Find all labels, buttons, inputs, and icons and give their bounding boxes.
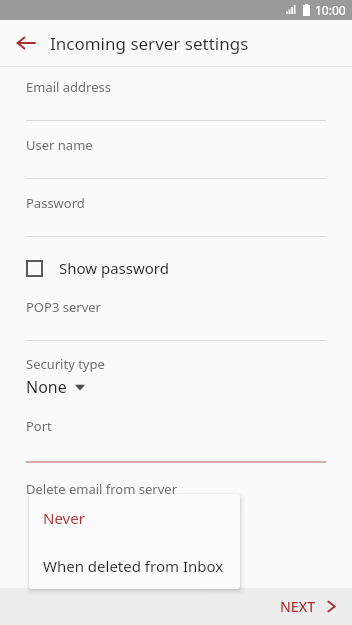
staticText: Delete email from server <box>26 480 177 498</box>
staticText: Incoming server settings <box>50 32 249 55</box>
button[interactable]: NEXT <box>280 597 336 616</box>
button[interactable]: Navigate up <box>8 25 44 61</box>
button[interactable]: Never <box>29 494 240 542</box>
staticText: 10:00 <box>315 2 346 18</box>
staticText: Password <box>26 194 85 212</box>
staticText: None <box>26 376 67 398</box>
staticText: Never <box>43 508 85 528</box>
button[interactable]: None <box>26 376 85 398</box>
staticText: NEXT <box>280 597 316 616</box>
staticText: Show password <box>59 258 169 278</box>
staticText: When deleted from Inbox <box>43 556 224 576</box>
staticText: POP3 server <box>26 298 101 316</box>
button[interactable]: When deleted from Inbox <box>29 542 240 589</box>
staticText: Port <box>26 417 52 435</box>
staticText: Email address <box>26 78 111 96</box>
button[interactable]: Show password <box>26 250 169 286</box>
staticText: User name <box>26 136 93 154</box>
staticText: Security type <box>26 355 105 373</box>
